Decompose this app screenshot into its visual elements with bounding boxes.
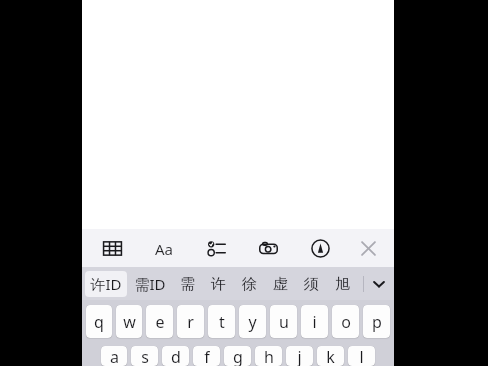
button[interactable]: Camera (254, 234, 282, 262)
staticText: g (233, 346, 243, 366)
button[interactable]: 徐 (235, 271, 264, 297)
button[interactable]: Close (354, 234, 382, 262)
staticText: 徐 (242, 275, 257, 294)
button[interactable]: w (116, 305, 142, 338)
staticText: 需ID (134, 274, 166, 294)
staticText: f (204, 346, 210, 366)
button[interactable]: More candidates (364, 267, 394, 300)
button[interactable]: e (146, 305, 173, 338)
staticText: 许ID (90, 274, 122, 294)
button[interactable]: 虚 (266, 271, 295, 297)
button[interactable]: 旭 (328, 271, 357, 297)
staticText: h (264, 346, 274, 366)
staticText: a (110, 346, 119, 366)
staticText: l (359, 346, 364, 366)
staticText: k (326, 346, 335, 366)
button[interactable]: o (332, 305, 359, 338)
button[interactable]: Insert table (98, 234, 126, 262)
button[interactable]: t (208, 305, 235, 338)
staticText: 须 (304, 275, 319, 294)
staticText: s (141, 346, 149, 366)
staticText: 旭 (335, 275, 350, 294)
button[interactable]: 需 (173, 271, 202, 297)
staticText: r (187, 311, 194, 333)
button[interactable]: p (363, 305, 390, 338)
staticText: u (279, 311, 289, 333)
button[interactable]: f (193, 346, 220, 366)
staticText: d (171, 346, 181, 366)
button[interactable]: r (177, 305, 204, 338)
button[interactable]: Markup (306, 234, 334, 262)
staticText: 需 (180, 275, 195, 294)
staticText: p (372, 311, 382, 333)
staticText: y (248, 311, 257, 333)
button[interactable]: h (255, 346, 282, 366)
button[interactable]: k (317, 346, 344, 366)
button[interactable]: 许 (204, 271, 233, 297)
button[interactable]: g (224, 346, 251, 366)
staticText: 虚 (273, 275, 288, 294)
button[interactable]: 许ID (85, 271, 127, 297)
button[interactable]: a (101, 346, 127, 366)
button[interactable]: y (239, 305, 266, 338)
button[interactable]: Checklist (202, 234, 230, 262)
staticText: j (297, 346, 302, 366)
button[interactable]: Text formatting (150, 234, 178, 262)
staticText: w (123, 311, 136, 333)
staticText: t (219, 311, 225, 333)
staticText: i (312, 311, 317, 333)
button[interactable]: l (348, 346, 375, 366)
button[interactable]: i (301, 305, 328, 338)
staticText: e (155, 311, 165, 333)
staticText: 许 (211, 275, 226, 294)
button[interactable]: 需ID (129, 271, 171, 297)
button[interactable]: j (286, 346, 313, 366)
button[interactable]: q (86, 305, 112, 338)
staticText: o (341, 311, 351, 333)
staticText: Aa (155, 239, 174, 258)
staticText: q (94, 311, 104, 333)
button[interactable]: u (270, 305, 297, 338)
button[interactable]: d (162, 346, 189, 366)
button[interactable]: 须 (297, 271, 326, 297)
button[interactable]: s (131, 346, 158, 366)
